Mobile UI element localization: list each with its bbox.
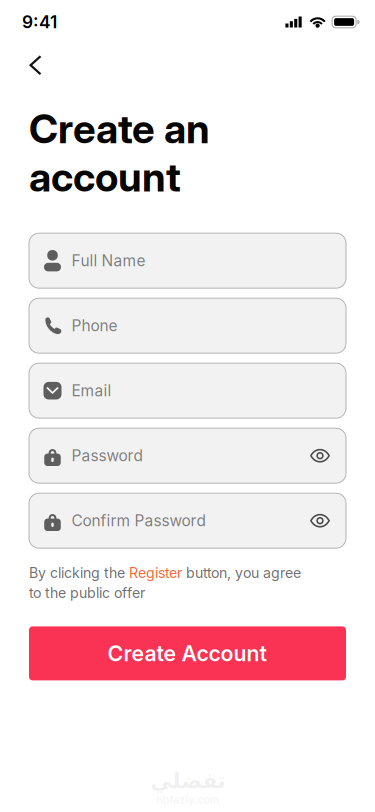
staticText: Email bbox=[71, 381, 111, 400]
staticText: Register bbox=[129, 564, 182, 581]
button[interactable]: Full Name bbox=[29, 233, 346, 288]
staticText: Create Account bbox=[107, 640, 267, 666]
staticText: nbfazly.com bbox=[156, 793, 218, 806]
staticText: Phone bbox=[71, 316, 117, 335]
staticText: Create an account bbox=[29, 104, 210, 201]
staticText: button, you agree bbox=[182, 564, 301, 581]
button[interactable]: Confirm Password bbox=[29, 493, 300, 548]
button[interactable]: Create Account bbox=[29, 626, 346, 680]
staticText: Password bbox=[71, 446, 142, 465]
staticText: 9:41 bbox=[22, 11, 57, 32]
button[interactable]: Email bbox=[29, 363, 346, 418]
staticText: Full Name bbox=[71, 251, 145, 270]
button[interactable]: Show Password bbox=[300, 428, 346, 483]
button[interactable]: Show Confirm Password bbox=[300, 493, 346, 548]
staticText: Confirm Password bbox=[71, 511, 205, 530]
button[interactable]: Phone bbox=[29, 298, 346, 353]
staticText: تفضلي bbox=[150, 768, 225, 793]
button[interactable]: Register bbox=[129, 564, 182, 581]
button[interactable]: Back bbox=[21, 47, 50, 83]
staticText: to the public offer bbox=[29, 584, 145, 601]
button[interactable]: Password bbox=[29, 428, 300, 483]
staticText: By clicking the bbox=[29, 564, 129, 581]
